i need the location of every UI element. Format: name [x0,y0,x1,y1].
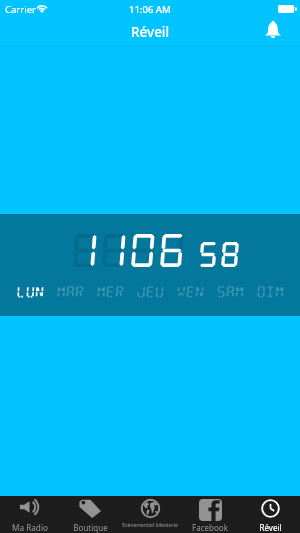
staticText: Carrier [5,3,36,16]
staticText: 11:06 AM [129,3,171,16]
staticText: Réveil [259,522,282,533]
button[interactable]: Réveil [240,496,300,533]
button[interactable]: Facebook [180,496,240,533]
staticText: Boutique [73,522,108,533]
staticText: Ma Radio [12,522,48,533]
button[interactable]: Alarme [259,18,287,46]
button[interactable]: Ma Radio [0,496,60,533]
button[interactable]: Boutique [60,496,120,533]
staticText: Réveil [131,23,170,41]
staticText: Facebook [192,522,228,533]
staticText: Événementiel billetterie [122,522,178,529]
button[interactable]: Événementiel billetterie [120,496,180,533]
